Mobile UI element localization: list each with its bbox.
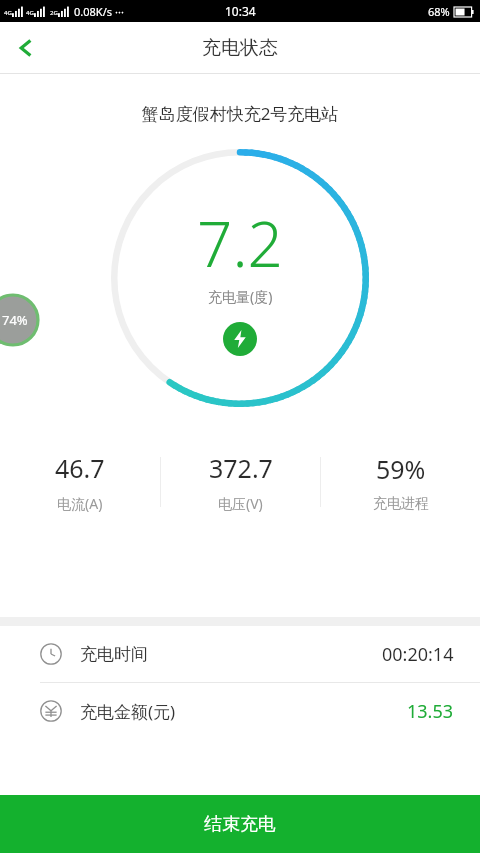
button[interactable]: 充电时间 [0,626,480,682]
staticText: 充电金额(元) [80,700,176,723]
staticText: 2G [50,9,58,17]
staticText: 电流(A) [57,494,103,513]
staticText: 0.08K/s [74,4,112,19]
staticText: 68% [428,4,450,19]
staticText: 充电进程 [373,495,429,513]
staticText: 372.7 [209,451,273,485]
staticText: 13.53 [407,699,454,724]
staticText: 蟹岛度假村快充2号充电站 [0,102,480,125]
staticText: 4G [26,9,34,17]
staticText: 充电状态 [202,36,278,60]
staticText: 电压(V) [218,494,263,513]
staticText: 结束充电 [204,813,276,836]
button[interactable]: 充电金额(元) [0,683,480,739]
button[interactable]: Back [0,22,52,74]
staticText: 46.7 [55,451,105,485]
staticText: 10:34 [225,3,256,19]
staticText: 7.2 [197,201,283,285]
staticText: ··· [115,4,124,19]
staticText: 00:20:14 [382,642,454,667]
staticText: 4G [4,9,12,17]
staticText: 充电时间 [80,644,148,665]
staticText: 74% [2,311,28,329]
staticText: 充电量(度) [208,287,273,306]
button[interactable]: 结束充电 [0,795,480,853]
staticText: 59% [376,452,426,486]
